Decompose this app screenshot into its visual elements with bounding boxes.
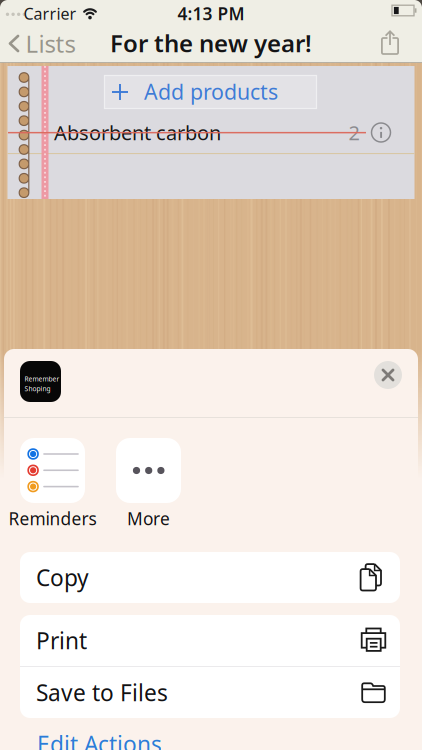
staticText: Lists	[25, 28, 75, 59]
button[interactable]: More	[116, 438, 181, 530]
staticText: Reminders	[8, 507, 96, 530]
staticText: For the new year!	[110, 27, 312, 59]
button[interactable]: Share	[381, 30, 399, 54]
staticText: 2	[348, 119, 359, 146]
button[interactable]: Add products	[104, 75, 317, 109]
staticText: Edit Actions	[37, 729, 162, 750]
staticText: Add products	[144, 77, 278, 106]
button[interactable]: Close	[374, 361, 402, 389]
staticText: Absorbent carbon	[54, 119, 221, 146]
button[interactable]: Print	[20, 615, 400, 666]
staticText: Print	[36, 625, 87, 655]
staticText: Shoping	[24, 384, 50, 393]
staticText: Remember	[24, 374, 59, 383]
staticText: Copy	[36, 562, 89, 592]
button[interactable]: Lists	[8, 28, 75, 59]
button[interactable]: Edit Actions	[37, 729, 237, 750]
button[interactable]: Reminders	[8, 438, 96, 530]
button[interactable]: Copy	[20, 552, 400, 603]
staticText: 4:13 PM	[177, 2, 244, 25]
staticText: Carrier	[23, 3, 76, 24]
staticText: More	[127, 507, 170, 530]
staticText: Save to Files	[36, 677, 168, 707]
button[interactable]: Save to Files	[20, 667, 400, 718]
button[interactable]: Details	[370, 122, 391, 143]
